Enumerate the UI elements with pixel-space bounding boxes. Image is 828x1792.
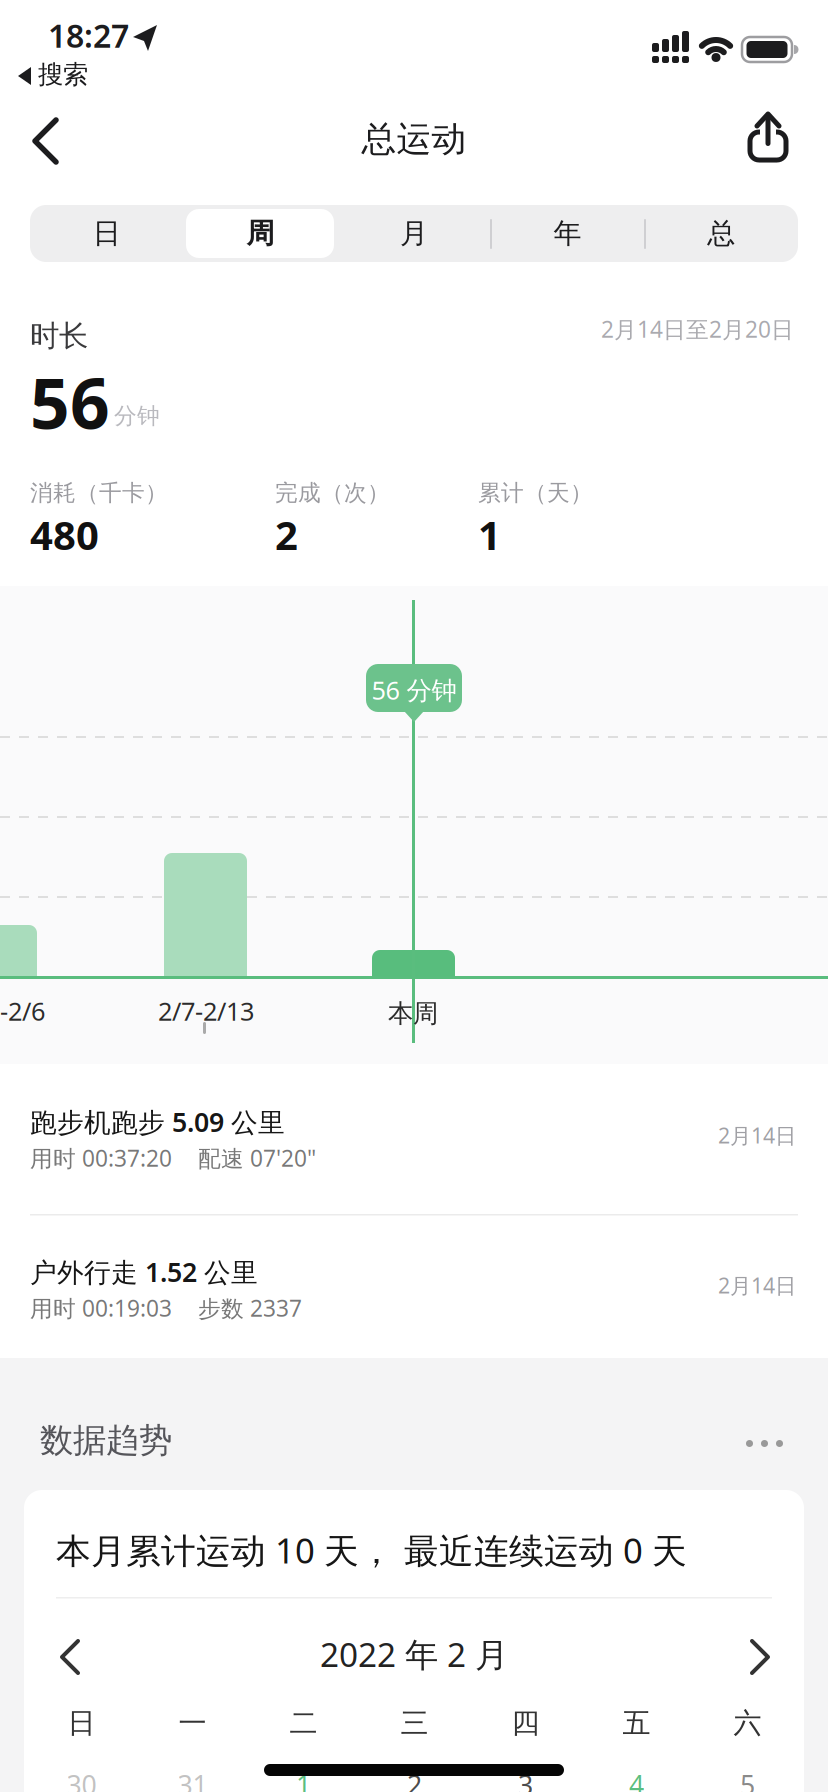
staticText: 2 [275, 508, 298, 561]
staticText: 2/7-2/13 [158, 994, 254, 1028]
staticText: 1 [296, 1767, 311, 1792]
staticText: -2/6 [0, 994, 45, 1028]
staticText: 2月14日至2月20日 [601, 314, 794, 344]
staticText: 二 [289, 1706, 317, 1740]
staticText: 总运动 [361, 118, 466, 161]
staticText: 本周 [388, 998, 438, 1029]
staticText: 2月14日 [718, 1121, 796, 1149]
staticText: 1 [478, 508, 501, 561]
staticText: 完成（次） [275, 479, 390, 507]
staticText: 一 [178, 1706, 206, 1740]
staticText: 配速 07'20" [198, 1143, 316, 1173]
staticText: 步数 2337 [198, 1293, 302, 1323]
staticText: 消耗（千卡） [30, 479, 168, 507]
staticText: 六 [733, 1706, 761, 1740]
staticText: 数据趋势 [40, 1420, 172, 1461]
staticText: 周 [246, 216, 274, 251]
staticText: 30 [66, 1767, 96, 1792]
staticText: 56 [30, 356, 110, 448]
button[interactable]: 户外行走 1.52 公里 [0, 1214, 828, 1364]
button[interactable] [0, 0, 828, 1792]
staticText: 2月14日 [718, 1271, 796, 1299]
staticText: 搜索 [38, 59, 88, 90]
button[interactable]: 跑步机跑步 5.09 公里 [0, 1064, 828, 1214]
staticText: 分钟 [114, 402, 160, 430]
button[interactable]: 年 [491, 205, 644, 262]
button[interactable]: 总 [644, 205, 798, 262]
staticText: 年 [554, 216, 582, 251]
staticText: 五 [622, 1706, 650, 1740]
staticText: 累计（天） [478, 479, 593, 507]
staticText: 5 [740, 1767, 755, 1792]
staticText: 四 [511, 1706, 539, 1740]
staticText: 三 [400, 1706, 428, 1740]
staticText: 日 [67, 1706, 95, 1740]
button[interactable]: 日 [30, 205, 184, 262]
button[interactable]: 月 [337, 205, 491, 262]
staticText: 户外行走 1.52 公里 [30, 1254, 258, 1289]
staticText: 时长 [30, 318, 88, 354]
staticText: 18:27 [48, 14, 129, 56]
staticText: 月 [400, 216, 428, 251]
staticText: 总 [707, 216, 735, 251]
button[interactable] [0, 0, 828, 1792]
staticText: 480 [30, 508, 99, 561]
staticText: 3 [518, 1767, 533, 1792]
staticText: 4 [629, 1767, 644, 1792]
button[interactable] [746, 1440, 783, 1447]
staticText: 用时 00:37:20 [30, 1143, 172, 1173]
staticText: 用时 00:19:03 [30, 1293, 172, 1323]
staticText: 2022 年 2 月 [320, 1632, 508, 1676]
button[interactable]: 周 [184, 205, 337, 262]
button[interactable] [0, 0, 828, 1792]
staticText: 日 [93, 216, 121, 251]
staticText: 31 [177, 1767, 207, 1792]
button[interactable] [0, 0, 828, 1792]
staticText: 跑步机跑步 5.09 公里 [30, 1104, 285, 1139]
staticText: 本月累计运动 10 天， 最近连续运动 0 天 [56, 1527, 687, 1573]
staticText: 56 分钟 [371, 673, 456, 707]
staticText: 2 [407, 1767, 422, 1792]
